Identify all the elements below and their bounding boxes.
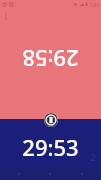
staticText: 2 [90, 151, 96, 163]
button[interactable]: 1 [0, 0, 101, 120]
staticText: 29:53 [22, 132, 79, 162]
button[interactable]: Home [45, 169, 55, 179]
button[interactable]: 29:53 [0, 119, 101, 180]
button[interactable]: Back [14, 169, 24, 179]
staticText: 7:09 [90, 2, 99, 8]
staticText: 29:58 [22, 44, 79, 74]
button[interactable]: Recents [77, 169, 87, 179]
staticText: 1 [3, 11, 9, 23]
button[interactable]: Pause [44, 113, 58, 127]
